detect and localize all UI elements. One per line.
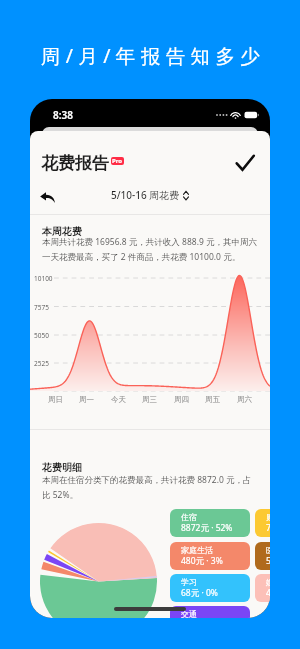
staticText: 本周共计花费 16956.8 元，共计收入 888.9 元，其中周六一天花费最高… [42, 236, 258, 263]
staticText: 2525 [34, 359, 49, 368]
staticText: 周一 [79, 395, 94, 404]
staticText: 10100 [34, 274, 53, 283]
staticText: 5元 · 0% [266, 555, 270, 567]
staticText: 8:38 [53, 108, 73, 122]
staticText: 本周花费 [42, 225, 82, 238]
staticText: 花费报告 [41, 153, 109, 174]
button[interactable]: 学习 [170, 574, 250, 602]
staticText: 周三 [142, 395, 157, 404]
staticText: 68元 · 0% [181, 587, 218, 599]
button[interactable]: 医疗 [255, 542, 270, 570]
staticText: 今天 [111, 395, 126, 404]
staticText: 7元 · 0% [266, 522, 270, 534]
staticText: 住宿 [181, 512, 197, 522]
staticText: 周六 [237, 395, 252, 404]
staticText: 周/月/年报告知多少 [3, 42, 300, 69]
staticText: 娱乐 [266, 577, 270, 587]
button[interactable]: 购物 [255, 509, 270, 537]
button[interactable]: 交通 [170, 606, 250, 618]
staticText: 5050 [34, 331, 49, 340]
staticText: 学习 [181, 577, 197, 587]
staticText: 购物 [266, 512, 270, 522]
staticText: 家庭生活 [181, 545, 213, 555]
button[interactable]: 住宿 [170, 509, 250, 537]
staticText: 本周在住宿分类下的花费最高，共计花费 8872.0 元，占比 52%。 [42, 474, 258, 501]
staticText: 周日 [48, 395, 63, 404]
staticText: 交通 [181, 609, 197, 618]
staticText: 7575 [34, 303, 49, 312]
staticText: 医疗 [266, 545, 270, 555]
button[interactable]: 5/10-16 周花费 [111, 188, 189, 202]
staticText: 花费明细 [42, 461, 82, 474]
staticText: 4元 · 0% [266, 587, 270, 599]
staticText: 8872元 · 52% [181, 522, 233, 534]
staticText: 周四 [174, 395, 189, 404]
staticText: 5/10-16 周花费 [111, 188, 180, 202]
staticText: Pro [112, 157, 123, 165]
button[interactable]: 家庭生活 [170, 542, 250, 570]
button[interactable]: Done [230, 148, 259, 177]
button[interactable]: 娱乐 [255, 574, 270, 602]
staticText: 周五 [205, 395, 220, 404]
button[interactable]: Back [36, 186, 58, 208]
staticText: 480元 · 3% [181, 555, 223, 567]
